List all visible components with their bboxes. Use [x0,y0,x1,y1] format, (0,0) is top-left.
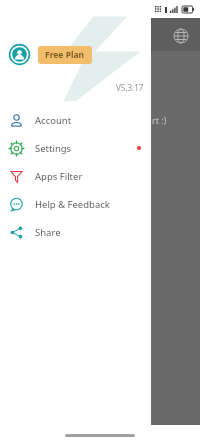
button[interactable]: Language [173,28,189,44]
button[interactable]: Account [0,106,151,134]
button[interactable]: Free Plan [9,44,92,65]
staticText: Settings [35,142,72,155]
button[interactable]: Settings [0,134,151,162]
button[interactable]: Apps Filter [0,162,151,190]
staticText: V5.3.17 [116,82,144,93]
staticText: Help & Feedback [35,198,110,211]
staticText: rt :) [152,114,167,126]
staticText: Account [35,114,72,127]
button[interactable]: Help & Feedback [0,190,151,218]
staticText: Apps Filter [35,170,83,183]
staticText: Free Plan [45,49,85,61]
button[interactable]: Share [0,218,151,246]
staticText: Share [35,226,61,239]
